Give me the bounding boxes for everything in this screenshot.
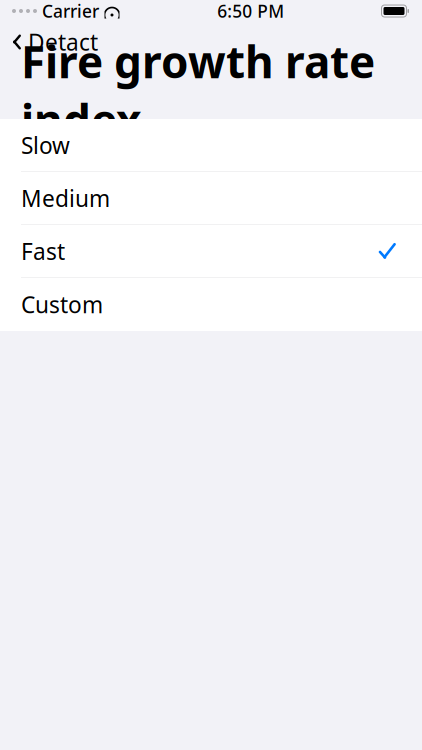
staticText: Carrier <box>42 0 99 22</box>
staticText: Medium <box>21 183 110 213</box>
staticText: Fast <box>21 236 65 266</box>
staticText: 6:50 PM <box>217 0 284 22</box>
staticText: Custom <box>21 289 103 319</box>
button[interactable]: Custom <box>0 278 422 331</box>
button[interactable]: Fast <box>0 225 422 278</box>
button[interactable]: Detact <box>0 22 108 62</box>
button[interactable]: Medium <box>0 172 422 225</box>
staticText: Fire growth rate index <box>21 32 375 149</box>
button[interactable]: Slow <box>0 119 422 172</box>
staticText: Slow <box>21 130 70 160</box>
staticText: Detact <box>28 27 98 57</box>
